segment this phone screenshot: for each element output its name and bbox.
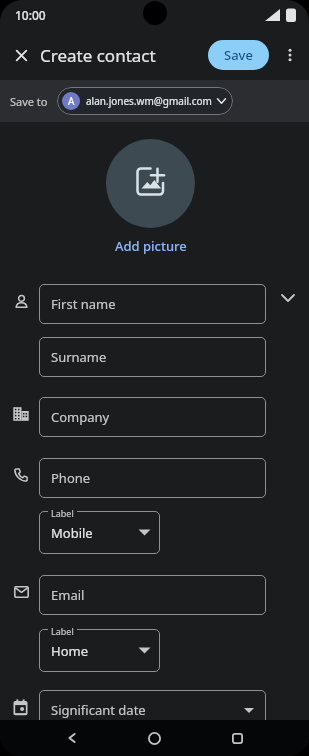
- button[interactable]: First name: [39, 284, 266, 324]
- staticText: Create contact: [40, 44, 156, 67]
- button[interactable]: Save: [208, 40, 269, 70]
- staticText: Email: [51, 586, 85, 604]
- button[interactable]: [30, 720, 113, 756]
- staticText: Label: [51, 625, 74, 637]
- button[interactable]: Mobile: [39, 511, 160, 554]
- staticText: First name: [51, 295, 116, 313]
- staticText: Home: [51, 642, 88, 660]
- staticText: Save: [224, 46, 253, 64]
- staticText: Add picture: [115, 237, 187, 255]
- button[interactable]: [106, 139, 195, 228]
- button[interactable]: Company: [39, 397, 266, 437]
- staticText: Phone: [51, 469, 91, 487]
- button[interactable]: Email: [39, 575, 266, 615]
- button[interactable]: A: [57, 87, 233, 115]
- button[interactable]: Surname: [39, 337, 266, 377]
- staticText: 10:00: [15, 7, 46, 23]
- button[interactable]: [266, 284, 309, 324]
- staticText: Surname: [51, 348, 107, 366]
- button[interactable]: [10, 44, 32, 66]
- button[interactable]: Significant date: [39, 690, 266, 720]
- staticText: Mobile: [51, 524, 93, 542]
- button[interactable]: Phone: [39, 458, 266, 498]
- staticText: Save to: [10, 94, 48, 109]
- staticText: Label: [51, 507, 74, 519]
- button[interactable]: [277, 42, 303, 68]
- button[interactable]: [196, 720, 279, 756]
- button[interactable]: Add picture: [115, 237, 187, 255]
- staticText: Company: [51, 408, 110, 426]
- staticText: Significant date: [51, 701, 146, 719]
- staticText: A: [68, 94, 75, 108]
- button[interactable]: Home: [39, 629, 160, 672]
- staticText: alan.jones.wm@gmail.com: [86, 94, 212, 108]
- button[interactable]: [113, 720, 196, 756]
